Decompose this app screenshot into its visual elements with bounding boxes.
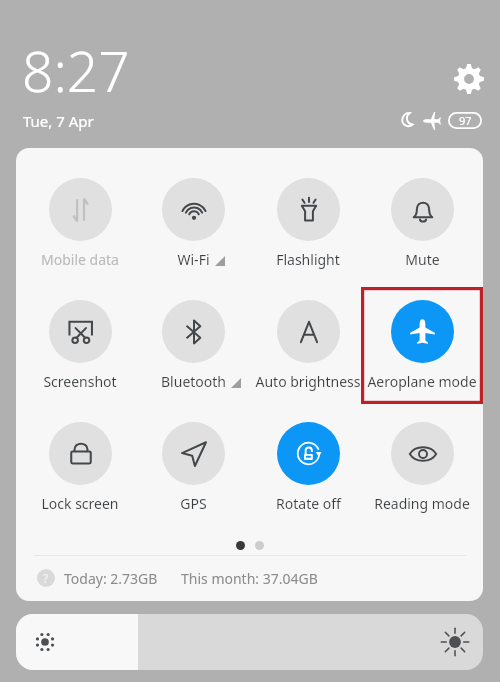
staticText: Mute (405, 250, 440, 269)
button[interactable]: Bluetooth (136, 300, 250, 391)
button[interactable]: Flashlight (251, 178, 365, 269)
staticText: Screenshot (43, 372, 117, 391)
button[interactable]: Mute (365, 178, 479, 269)
staticText: This month: 37.04GB (181, 569, 318, 588)
staticText: 97 (459, 113, 472, 128)
button[interactable]: Auto brightness (251, 300, 365, 391)
button[interactable]: Data usage help (37, 569, 55, 587)
staticText: Aeroplane mode (367, 372, 477, 391)
staticText: Wi-Fi (177, 250, 210, 269)
button[interactable]: Aeroplane mode (365, 300, 479, 391)
staticText: Lock screen (41, 494, 119, 513)
button[interactable]: Settings (454, 64, 484, 94)
staticText: Bluetooth (161, 372, 226, 391)
staticText: Flashlight (276, 250, 340, 269)
button[interactable]: Screenshot (23, 300, 137, 391)
button[interactable]: Brightness (16, 614, 483, 670)
button[interactable]: Reading mode (365, 422, 479, 513)
button[interactable]: Lock screen (23, 422, 137, 513)
button[interactable]: Rotate off (251, 422, 365, 513)
staticText: Mobile data (41, 250, 119, 269)
staticText: Today: 2.73GB (64, 569, 158, 588)
button[interactable]: Wi-Fi (136, 178, 250, 269)
staticText: Reading mode (374, 494, 470, 513)
staticText: GPS (180, 494, 207, 513)
button[interactable]: Mobile data (23, 178, 137, 269)
staticText: ? (43, 570, 49, 586)
staticText: 8:27 (22, 33, 130, 108)
staticText: Rotate off (276, 494, 341, 513)
staticText: Auto brightness (255, 372, 361, 391)
staticText: Tue, 7 Apr (23, 111, 94, 131)
button[interactable]: GPS (136, 422, 250, 513)
